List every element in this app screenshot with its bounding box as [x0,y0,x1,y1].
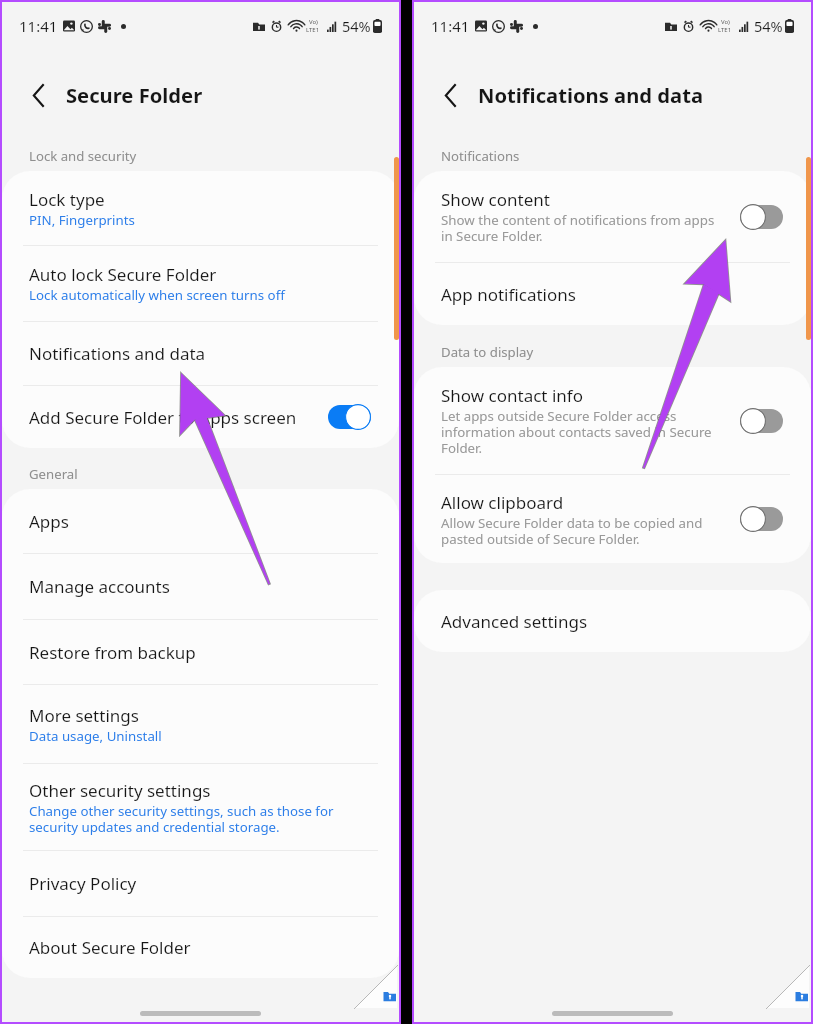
staticText: Lock automatically when screen turns off [29,286,285,304]
staticText: Secure Folder [66,81,203,109]
button[interactable]: Restore from backup [2,620,399,684]
staticText: Let apps outside Secure Folder access in… [441,407,720,457]
staticText: Auto lock Secure Folder [29,263,217,286]
staticText: Manage accounts [29,575,170,598]
button[interactable]: Navigate up [20,77,56,113]
staticText: Lock and security [29,147,137,165]
staticText: Show contact info [441,384,583,407]
staticText: 54% [342,16,371,36]
staticText: 54% [754,16,783,36]
button[interactable]: Advanced settings [414,590,811,652]
button[interactable]: Auto lock Secure Folder [2,246,399,321]
button[interactable]: More settings [2,685,399,763]
staticText: Change other security settings, such as … [29,802,371,836]
staticText: 11:41 [19,16,58,36]
staticText: Notifications and data [478,81,704,109]
staticText: Vo) [721,18,730,26]
staticText: Allow Secure Folder data to be copied an… [441,514,720,548]
staticText: Add Secure Folder to Apps screen [29,406,297,429]
staticText: Other security settings [29,779,211,802]
staticText: PIN, Fingerprints [29,211,135,229]
staticText: Notifications and data [29,342,206,365]
staticText: Advanced settings [441,610,588,633]
button[interactable]: Turn off [328,404,371,430]
staticText: Vo) [309,18,318,26]
staticText: Show the content of notifications from a… [441,211,720,245]
staticText: App notifications [441,283,576,306]
button[interactable]: Privacy Policy [2,851,399,916]
staticText: 11:41 [431,16,470,36]
staticText: LTE1 [306,26,320,34]
staticText: Data usage, Uninstall [29,727,162,745]
staticText: Restore from backup [29,641,196,664]
button[interactable]: App notifications [414,263,811,325]
button[interactable]: Add Secure Folder to Apps screen [2,386,399,448]
staticText: About Secure Folder [29,936,191,959]
staticText: Notifications [441,147,520,165]
staticText: Apps [29,510,69,533]
button[interactable]: Navigate up [432,77,468,113]
button[interactable]: Show contact info [414,367,811,474]
button[interactable]: Turn on [740,408,783,434]
staticText: Show content [441,188,550,211]
button[interactable]: Turn on [740,506,783,532]
staticText: More settings [29,704,139,727]
button[interactable]: Other security settings [2,764,399,850]
staticText: Allow clipboard [441,491,564,514]
staticText: Privacy Policy [29,872,137,895]
button[interactable]: Manage accounts [2,554,399,619]
staticText: General [29,465,78,483]
button[interactable]: Notifications and data [2,322,399,385]
button[interactable]: Turn on [740,204,783,230]
button[interactable]: About Secure Folder [2,917,399,978]
button[interactable]: Apps [2,489,399,553]
button[interactable]: Allow clipboard [414,475,811,563]
staticText: LTE1 [718,26,732,34]
staticText: Lock type [29,188,105,211]
staticText: Data to display [441,343,534,361]
button[interactable]: Show content [414,171,811,262]
button[interactable]: Lock type [2,171,399,245]
